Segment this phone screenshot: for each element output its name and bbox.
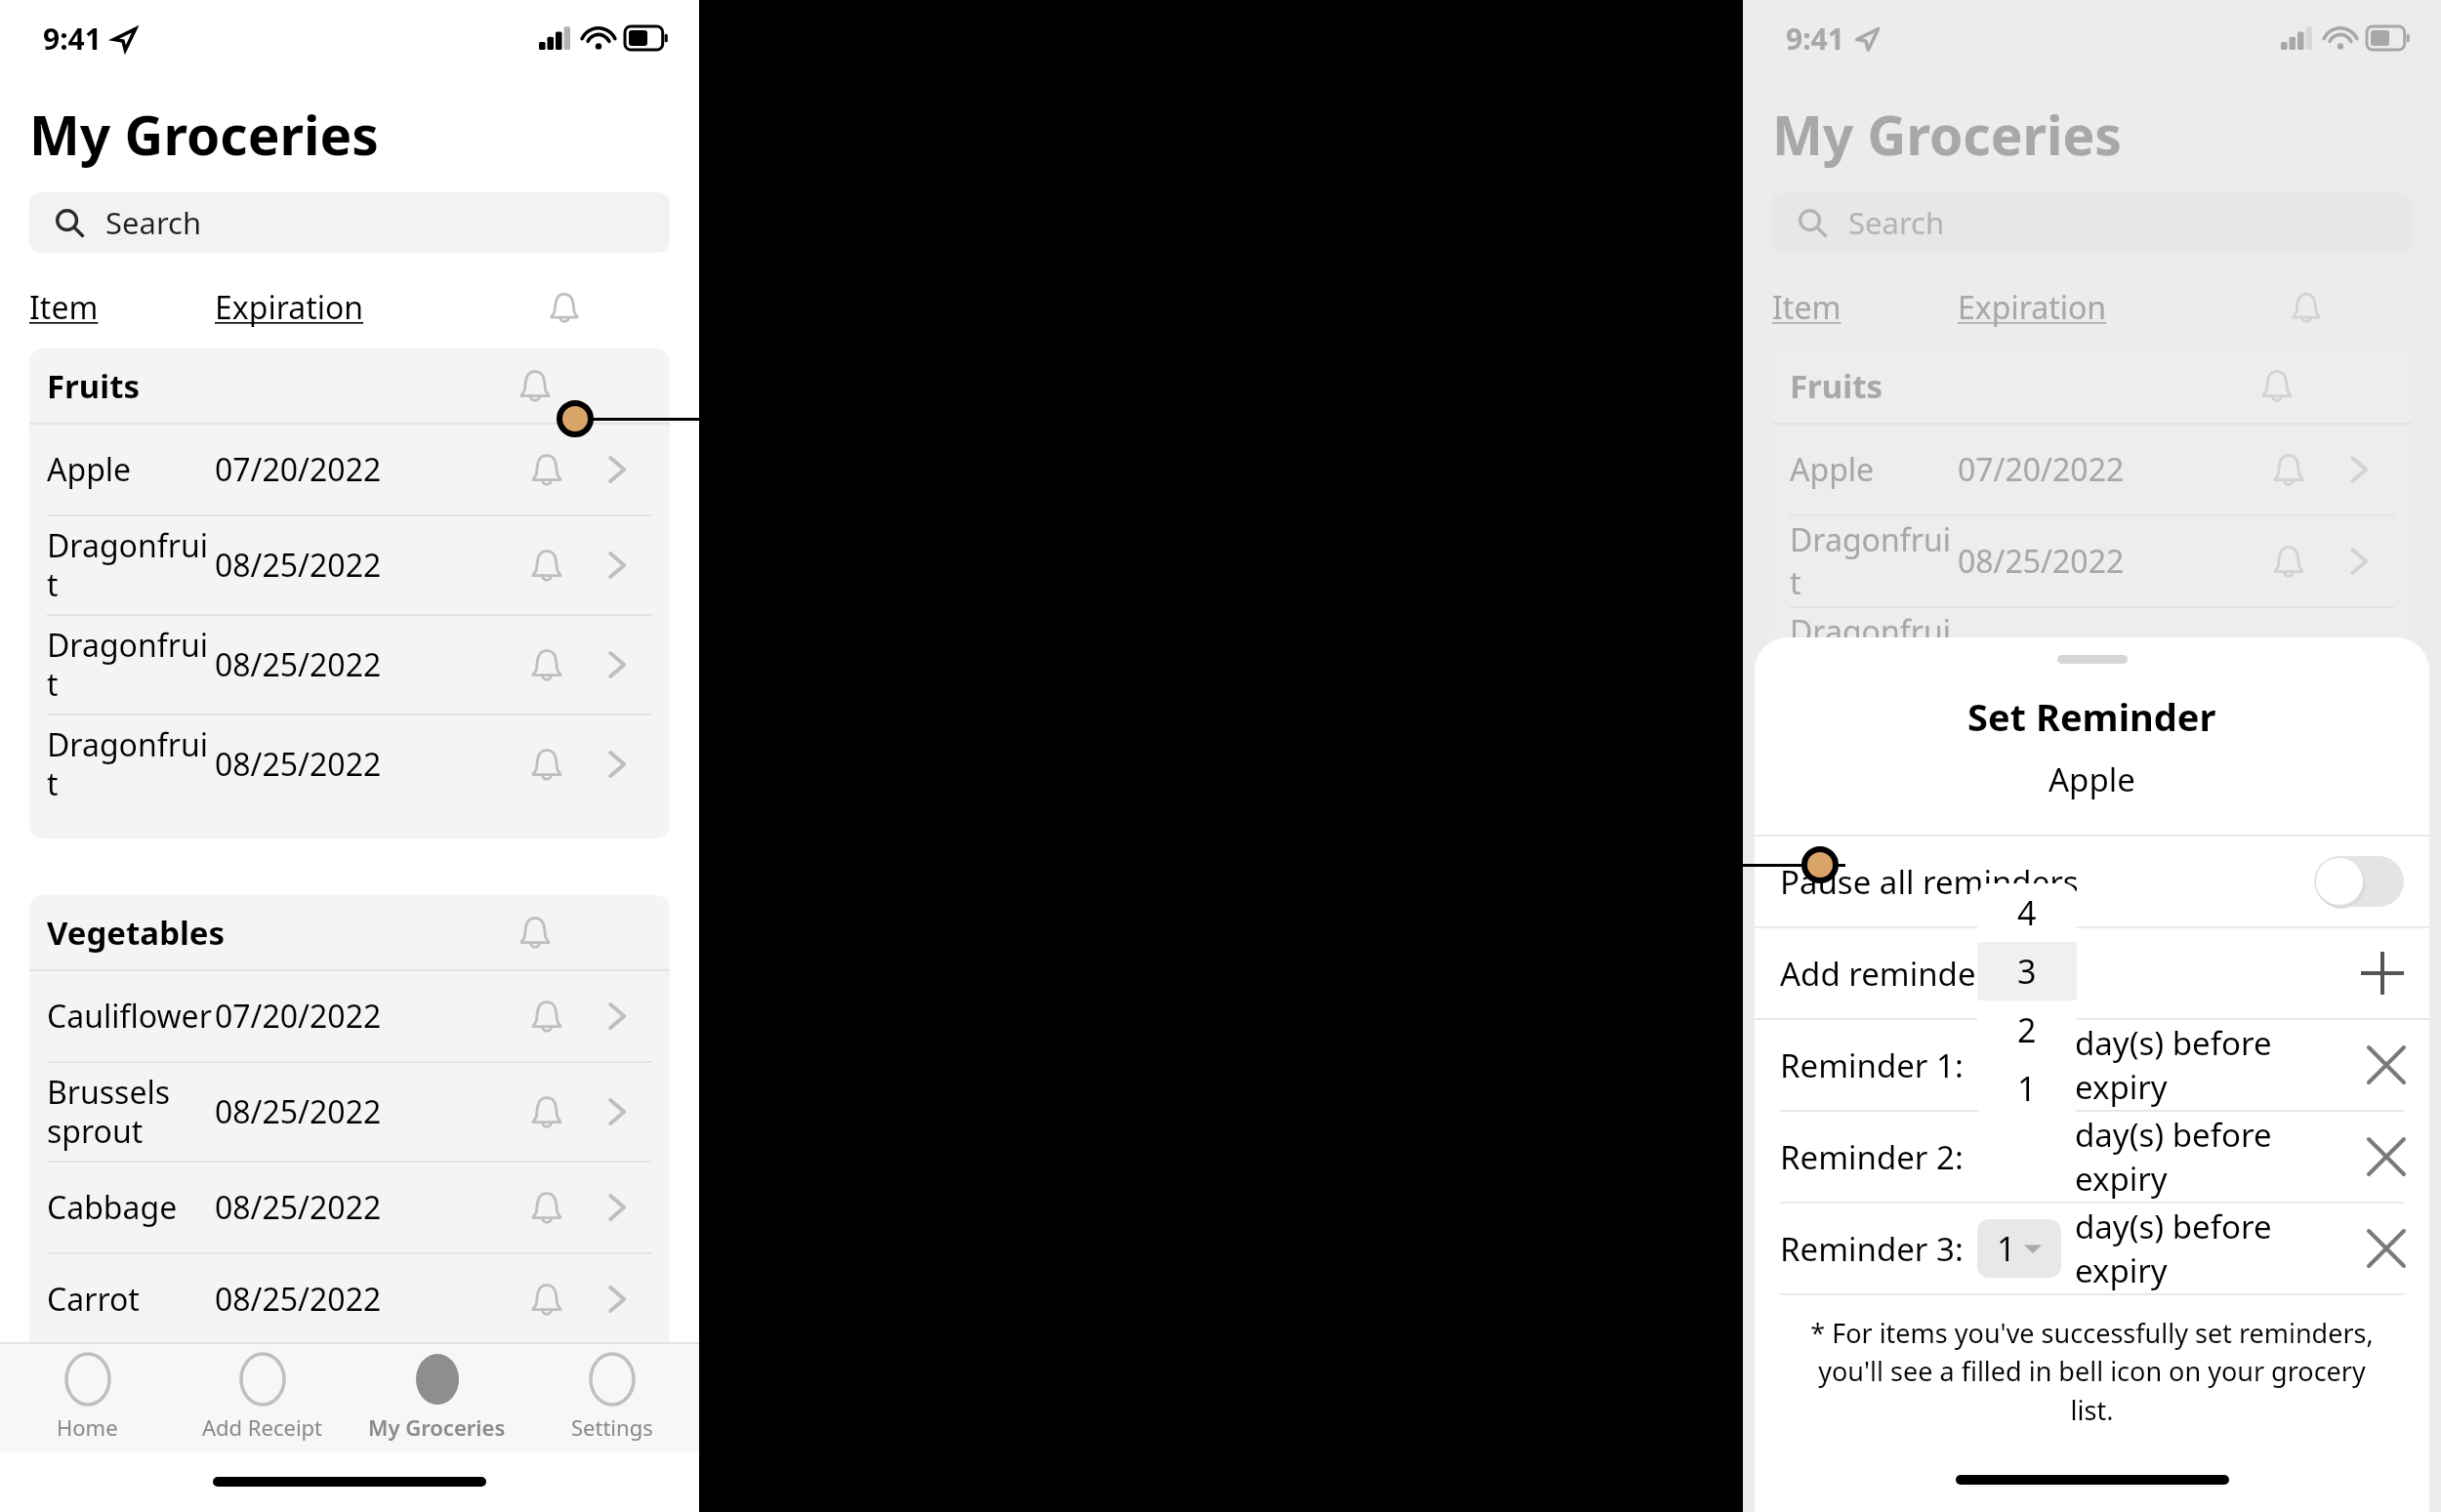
- staticText: Search: [1848, 202, 1945, 243]
- other: Reminder: [2289, 290, 2324, 325]
- other: Reminder: [547, 290, 582, 325]
- staticText: 2: [2017, 1007, 2037, 1052]
- other: Remove reminder: [2369, 1231, 2404, 1266]
- staticText: Reminder 2:: [1780, 1135, 1964, 1179]
- button[interactable]: Cabbage: [29, 1163, 670, 1252]
- staticText: Reminder 3:: [1780, 1227, 1964, 1271]
- staticText: 9:41: [1786, 19, 1844, 59]
- staticText: Cauliflower: [47, 995, 212, 1038]
- button[interactable]: Item: [29, 286, 215, 329]
- button[interactable]: Cauliflower: [29, 971, 670, 1061]
- staticText: My Groceries: [1772, 98, 2122, 171]
- other: Reminder: [528, 646, 565, 683]
- other: Section reminder: [500, 1426, 570, 1500]
- staticText: 1: [2017, 1066, 2037, 1111]
- button[interactable]: Vegetables: [29, 895, 670, 969]
- other: Reminder: [2270, 543, 2307, 580]
- staticText: Home: [57, 1412, 118, 1442]
- staticText: 08/25/2022: [1958, 632, 2125, 674]
- button[interactable]: Apple: [29, 425, 670, 514]
- staticText: Carrot: [47, 1278, 140, 1321]
- staticText: Fruits: [47, 364, 500, 408]
- button[interactable]: Reminder 3:: [1755, 1204, 2429, 1293]
- staticText: Expiration: [1958, 286, 2107, 329]
- button[interactable]: Fruits: [29, 348, 670, 423]
- staticText: Dragonfruit: [1790, 518, 1958, 604]
- button[interactable]: Search: [29, 192, 670, 253]
- button[interactable]: Settings: [524, 1344, 699, 1451]
- button[interactable]: Add Receipt: [175, 1344, 350, 1451]
- staticText: Apple: [1790, 448, 1875, 491]
- other: Reminder: [528, 746, 565, 783]
- button[interactable]: 3: [1977, 942, 2077, 1001]
- staticText: 08/25/2022: [215, 743, 382, 786]
- staticText: Expiration: [215, 286, 364, 329]
- staticText: 08/25/2022: [215, 544, 382, 587]
- staticText: Dragonfruit: [47, 723, 215, 805]
- button[interactable]: Add reminder: [1755, 928, 2429, 1018]
- other: Reminder: [517, 914, 554, 951]
- button[interactable]: Reminder 1:: [1755, 1020, 2429, 1110]
- staticText: 3: [2017, 949, 2037, 994]
- button[interactable]: 1: [1977, 1059, 2077, 1118]
- staticText: 07/20/2022: [215, 995, 382, 1038]
- staticText: Set Reminder: [1967, 691, 2216, 742]
- button[interactable]: 4: [1977, 883, 2077, 942]
- staticText: * For items you've successfully set remi…: [1794, 1315, 2390, 1428]
- staticText: Search: [105, 202, 202, 243]
- button[interactable]: Home: [0, 1344, 175, 1451]
- staticText: My Groceries: [368, 1412, 506, 1442]
- button[interactable]: 2: [1977, 1001, 2077, 1059]
- button[interactable]: Brussels sprout: [29, 1063, 670, 1161]
- staticText: Pause all reminders: [1780, 860, 2314, 904]
- button[interactable]: Pause all reminders: [1755, 837, 2429, 926]
- staticText: Cauliflower: [1790, 971, 1955, 1014]
- staticText: 9:41: [43, 19, 102, 59]
- staticText: Settings: [571, 1412, 653, 1442]
- staticText: 08/25/2022: [1958, 540, 2125, 583]
- other: Reminder: [2270, 634, 2307, 672]
- staticText: Sauces: [47, 1442, 500, 1486]
- staticText: Item: [1772, 286, 1841, 329]
- staticText: Fruits: [1790, 364, 2242, 408]
- button[interactable]: Notifications: [529, 280, 600, 335]
- other: Reminder: [528, 1093, 565, 1130]
- staticText: day(s) before expiry: [2075, 1205, 2369, 1292]
- staticText: 08/25/2022: [215, 643, 382, 686]
- staticText: Vegetables: [1790, 887, 2242, 931]
- button[interactable]: Dragonfruit: [29, 516, 670, 614]
- staticText: 08/25/2022: [215, 1090, 382, 1133]
- other: Reminder: [528, 1281, 565, 1318]
- staticText: Apple: [47, 448, 132, 491]
- button[interactable]: Sauces: [29, 1426, 670, 1500]
- staticText: 4: [2017, 890, 2037, 935]
- other: Add reminder: [2361, 952, 2404, 995]
- other: Remove reminder: [2369, 1139, 2404, 1174]
- staticText: Vegetables: [47, 911, 500, 955]
- staticText: day(s) before expiry: [2075, 1021, 2369, 1109]
- button[interactable]: Dragonfruit: [29, 616, 670, 714]
- staticText: 07/20/2022: [1958, 448, 2125, 491]
- button[interactable]: Carrot: [29, 1254, 670, 1344]
- button[interactable]: Expiration: [215, 286, 529, 329]
- other: Reminder: [2258, 367, 2296, 404]
- button[interactable]: Reminder 2:: [1755, 1112, 2429, 1202]
- other: Reminder: [528, 547, 565, 584]
- other: Reminder: [528, 1189, 565, 1226]
- staticText: Brussels sprout: [47, 1071, 215, 1153]
- staticText: Add reminder: [1780, 952, 2361, 996]
- other: Remove reminder: [2369, 1047, 2404, 1083]
- staticText: Dragonfruit: [47, 624, 215, 706]
- staticText: day(s) before expiry: [2075, 1113, 2369, 1201]
- other: Section reminder: [500, 895, 570, 969]
- button[interactable]: 1: [1977, 1219, 2061, 1278]
- other: Reminder: [528, 998, 565, 1035]
- staticText: Cabbage: [47, 1186, 178, 1229]
- button[interactable]: Dragonfruit: [29, 715, 670, 813]
- other: Reminder: [517, 1445, 554, 1482]
- button[interactable]: My Groceries: [350, 1344, 524, 1451]
